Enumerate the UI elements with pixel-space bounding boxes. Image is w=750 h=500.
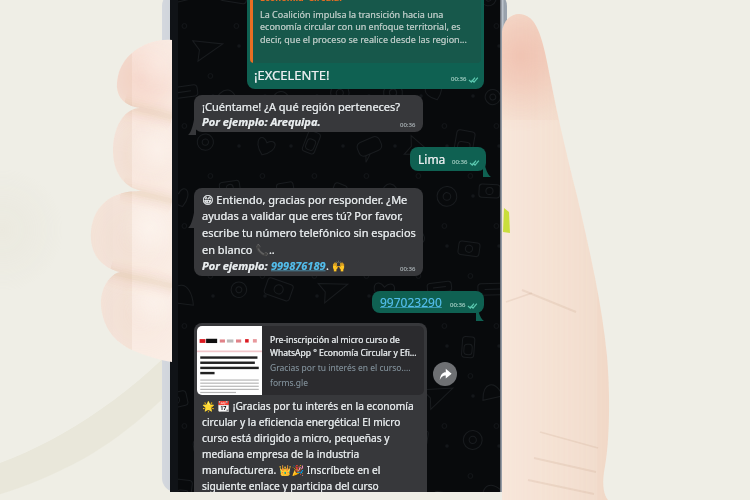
button[interactable]: Lima xyxy=(410,147,486,171)
staticText: forms.gle xyxy=(270,377,309,389)
staticText: Por ejemplo: xyxy=(202,258,271,273)
button[interactable]: 😁 Entiendo, gracias por responder. ¿Me a… xyxy=(194,188,423,276)
staticText: Por ejemplo: Arequipa. xyxy=(202,114,321,129)
staticText: . 🙌 xyxy=(326,258,346,273)
button[interactable]: Pre-inscripción al micro curso de WhatsA… xyxy=(194,323,427,492)
staticText: 997023290 xyxy=(380,294,442,310)
staticText: ¡EXCELENTE! xyxy=(254,66,330,84)
staticText: ¡Cuéntame! ¿A qué región perteneces? xyxy=(202,99,401,114)
staticText: 999876189 xyxy=(271,258,326,273)
staticText: 00:36 xyxy=(450,301,466,309)
button[interactable]: ¡Cuéntame! ¿A qué región perteneces? xyxy=(194,95,423,132)
button[interactable]: 997023290 xyxy=(372,291,484,313)
staticText: 00:36 xyxy=(400,265,416,273)
staticText: 00:36 xyxy=(400,121,416,129)
staticText: Gracias por tu interés en el curso.... xyxy=(270,362,411,374)
staticText: La Coalición impulsa la transición hacia… xyxy=(260,8,474,46)
staticText: 00:36 xyxy=(452,158,468,166)
staticText: 🌟 📆 ¡Gracias por tu interés en la econom… xyxy=(202,399,422,492)
button[interactable]: Economía Circular xyxy=(247,0,484,89)
staticText: 00:36 xyxy=(451,75,467,83)
button[interactable]: Forward message xyxy=(433,362,457,386)
staticText: Pre-inscripción al micro curso de WhatsA… xyxy=(270,334,418,359)
staticText: Lima xyxy=(418,151,446,167)
staticText: Economía Circular xyxy=(260,0,344,3)
staticText: 😁 Entiendo, gracias por responder. ¿Me a… xyxy=(202,192,416,258)
